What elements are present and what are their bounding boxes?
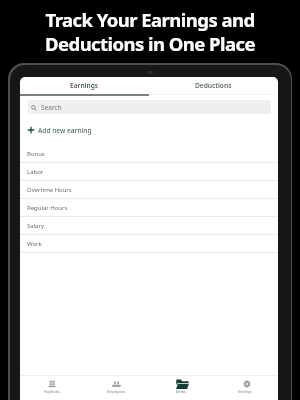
- staticText: Deductions: [195, 81, 232, 90]
- button[interactable]: Settings: [213, 376, 278, 400]
- staticText: PayStubs: [44, 389, 60, 394]
- staticText: Salary: [27, 222, 44, 230]
- staticText: Labor: [27, 168, 44, 176]
- staticText: Track Your Earnings and Deductions in On…: [45, 7, 255, 56]
- staticText: Earnings: [70, 81, 99, 90]
- staticText: Overtime Hours: [27, 186, 72, 194]
- staticText: Bonus: [27, 150, 45, 158]
- button[interactable]: Work: [20, 235, 278, 253]
- button[interactable]: Deductions: [149, 77, 278, 94]
- button[interactable]: Overtime Hours: [20, 181, 278, 199]
- button[interactable]: Employees: [84, 376, 148, 400]
- button[interactable]: PayStubs: [20, 376, 84, 400]
- button[interactable]: Bonus: [20, 145, 278, 163]
- staticText: Employees: [107, 389, 126, 394]
- button[interactable]: Items: [148, 376, 213, 400]
- button[interactable]: Earnings: [20, 77, 149, 94]
- staticText: Add new earning: [38, 126, 92, 135]
- staticText: Search: [41, 103, 62, 112]
- staticText: Work: [27, 240, 42, 248]
- staticText: Items: [176, 389, 186, 394]
- staticText: Settings: [238, 389, 253, 394]
- button[interactable]: Regular Hours: [20, 199, 278, 217]
- button[interactable]: Search: [28, 100, 271, 114]
- button[interactable]: Add new earning: [27, 123, 92, 137]
- button[interactable]: Salary: [20, 217, 278, 235]
- button[interactable]: Labor: [20, 163, 278, 181]
- staticText: Regular Hours: [27, 204, 68, 212]
